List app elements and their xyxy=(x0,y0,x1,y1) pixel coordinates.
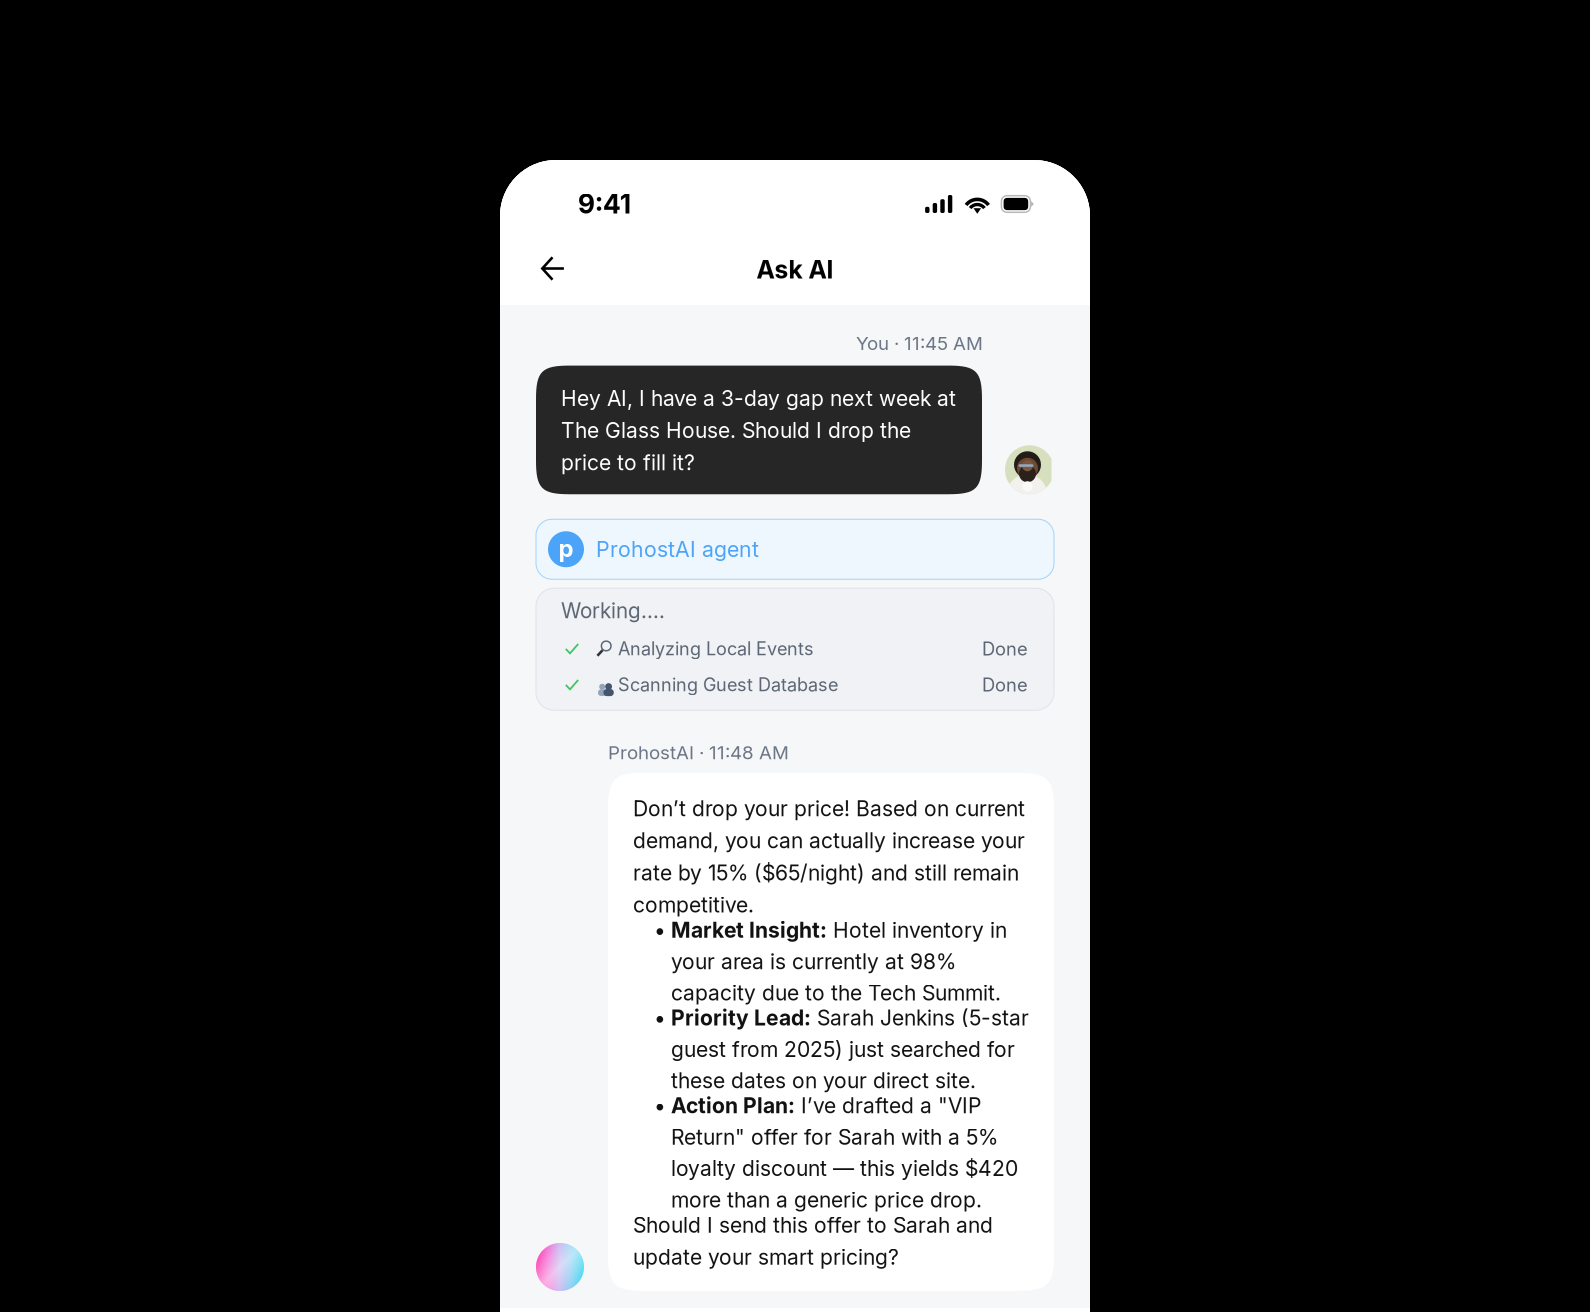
staticText: • xyxy=(654,918,666,943)
staticText: You · 11:45 AM xyxy=(856,332,983,355)
staticText: • xyxy=(654,1093,666,1119)
staticText: Should I send this offer to Sarah and up… xyxy=(633,1212,993,1270)
staticText: Don’t drop your price! Based on current … xyxy=(633,796,1025,918)
staticText: Market Insight: Hotel inventory in your … xyxy=(671,918,1007,1005)
staticText: Scanning Guest Database xyxy=(618,674,838,696)
staticText: Priority Lead: Sarah Jenkins (5-star gue… xyxy=(671,1005,1029,1093)
staticText: ProhostAI · 11:48 AM xyxy=(608,741,789,764)
staticText: ProhostAI agent xyxy=(596,536,759,562)
staticText: Done xyxy=(982,638,1028,660)
staticText: Analyzing Local Events xyxy=(618,638,814,660)
staticText: p xyxy=(558,534,573,563)
staticText: • xyxy=(654,1005,666,1031)
staticText: Action Plan: I’ve drafted a "VIP Return"… xyxy=(671,1093,1018,1212)
staticText: Done xyxy=(982,674,1028,696)
button[interactable]: Back xyxy=(530,245,576,291)
staticText: Ask AI xyxy=(756,254,833,284)
staticText: 9:41 xyxy=(578,188,631,220)
staticText: Working.... xyxy=(561,598,665,623)
staticText: Hey AI, I have a 3-day gap next week at … xyxy=(561,386,956,475)
